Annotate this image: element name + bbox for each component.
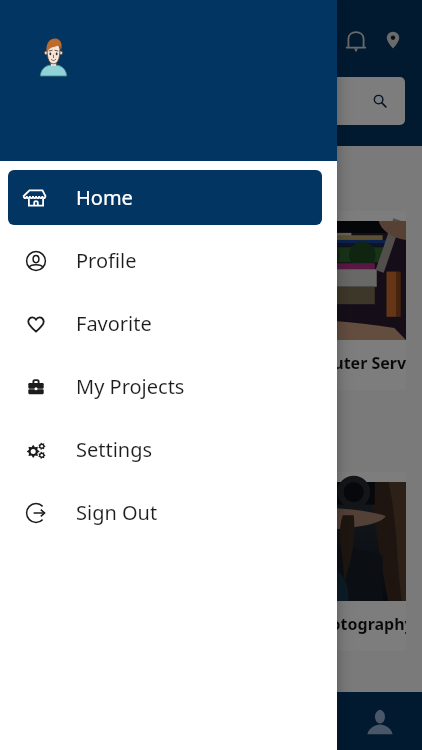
staticText: Favorite (76, 310, 152, 337)
staticText: Home (76, 184, 133, 211)
button[interactable]: Sign Out (8, 485, 322, 540)
staticText: Settings (76, 436, 153, 463)
button[interactable]: Account (338, 692, 422, 750)
button[interactable]: Chat (254, 692, 338, 750)
staticText: Photography (310, 613, 406, 634)
button[interactable]: Computer Services (16, 211, 406, 390)
staticText: Profile (76, 247, 137, 274)
staticText: Sign Out (76, 499, 158, 526)
staticText: My Projects (76, 373, 185, 400)
button[interactable]: Account (39, 36, 68, 76)
button[interactable]: Profile (8, 233, 322, 288)
button[interactable]: Favorite (8, 296, 322, 351)
button[interactable]: Home (8, 170, 322, 225)
button[interactable]: Search services (17, 77, 405, 125)
button[interactable]: Photography (16, 472, 406, 651)
button[interactable]: Settings (8, 422, 322, 477)
button[interactable]: My Projects (8, 359, 322, 414)
staticText: Computer Services (287, 352, 406, 373)
button[interactable]: Location (373, 21, 413, 61)
button[interactable]: Notifications (333, 21, 373, 61)
